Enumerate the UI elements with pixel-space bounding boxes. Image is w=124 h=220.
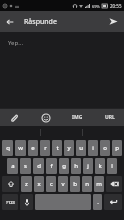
button[interactable]: l [107, 158, 117, 174]
button[interactable]: IMG [69, 109, 85, 125]
staticText: d [37, 162, 41, 170]
button[interactable]: Shift [2, 176, 19, 192]
staticText: . [97, 198, 99, 206]
staticText: n [85, 180, 89, 188]
staticText: p [115, 144, 119, 152]
button[interactable]: t [52, 140, 62, 156]
staticText: a [11, 162, 15, 170]
button[interactable]: v [58, 176, 68, 192]
staticText: k [98, 162, 102, 170]
button[interactable]: h [71, 158, 81, 174]
button[interactable]: j [83, 158, 93, 174]
button[interactable]: u [76, 140, 86, 156]
staticText: l [111, 162, 113, 170]
button[interactable]: y [64, 140, 74, 156]
button[interactable]: i [88, 140, 98, 156]
staticText: r [44, 144, 47, 152]
button[interactable]: Emoji [38, 110, 53, 125]
staticText: c [50, 180, 53, 188]
button[interactable]: a [7, 158, 18, 174]
button[interactable]: g [59, 158, 69, 174]
staticText: ?123 [6, 200, 15, 205]
button[interactable]: Backspace [106, 176, 122, 192]
button[interactable]: Attach file [6, 110, 21, 125]
staticText: g [62, 162, 66, 170]
staticText: URL [105, 114, 115, 121]
staticText: 20:55 [110, 3, 122, 9]
staticText: s [24, 162, 27, 170]
button[interactable]: n [82, 176, 92, 192]
button[interactable]: p [112, 140, 122, 156]
staticText: i [92, 144, 94, 152]
staticText: b [73, 180, 77, 188]
staticText: t [56, 144, 59, 152]
staticText: Råspunde [24, 17, 103, 27]
staticText: v [61, 180, 65, 188]
button[interactable]: x [34, 176, 44, 192]
staticText: IMG [72, 114, 83, 121]
button[interactable]: URL [102, 109, 118, 125]
staticText: z [25, 180, 28, 188]
button[interactable]: w [15, 140, 26, 156]
staticText: x [37, 180, 41, 188]
button[interactable]: e [28, 140, 38, 156]
staticText: 69% [92, 4, 100, 9]
staticText: e [31, 144, 35, 152]
staticText: u [79, 144, 83, 152]
button[interactable]: o [100, 140, 110, 156]
button[interactable]: Symbols [2, 194, 18, 210]
button[interactable]: b [70, 176, 80, 192]
button[interactable]: s [20, 158, 31, 174]
button[interactable]: f [46, 158, 57, 174]
staticText: j [87, 162, 89, 170]
button[interactable]: z [21, 176, 32, 192]
button[interactable]: r [40, 140, 50, 156]
button[interactable]: q [2, 140, 13, 156]
button[interactable]: d [33, 158, 44, 174]
staticText: f [50, 162, 53, 170]
staticText: q [6, 144, 10, 152]
button[interactable]: . [93, 194, 102, 210]
button[interactable]: Back [0, 12, 20, 32]
staticText: w [18, 144, 23, 152]
button[interactable]: c [46, 176, 56, 192]
button[interactable]: Send [103, 11, 124, 32]
staticText: o [103, 144, 107, 152]
button[interactable]: m [94, 176, 104, 192]
button[interactable]: Voice input [20, 194, 33, 210]
staticText: Yep... [8, 39, 23, 47]
staticText: y [67, 144, 71, 152]
staticText: m [96, 180, 102, 188]
button[interactable]: Enter [104, 194, 122, 210]
button[interactable]: k [95, 158, 105, 174]
staticText: h [74, 162, 78, 170]
